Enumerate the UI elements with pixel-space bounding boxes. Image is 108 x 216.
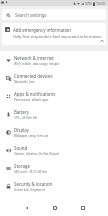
staticText: 37% xyxy=(85,1,92,6)
button[interactable]: Connected devices xyxy=(0,69,108,87)
staticText: Help first responders find important inf… xyxy=(13,34,102,39)
button[interactable]: Add emergency information xyxy=(2,23,106,45)
button[interactable]: Display xyxy=(0,123,108,141)
staticText: 37% - 4h 50m left xyxy=(14,116,38,120)
button[interactable]: Sound xyxy=(0,141,108,159)
staticText: 10:39 xyxy=(96,1,105,6)
staticText: Display xyxy=(14,127,29,133)
staticText: 44% used - 35.57 GB free xyxy=(14,170,48,174)
staticText: Network & internet xyxy=(14,55,54,61)
button[interactable]: Storage xyxy=(0,159,108,177)
staticText: Apps & notifications xyxy=(14,91,56,97)
button[interactable]: Security & location xyxy=(0,177,108,195)
button[interactable]: Collapse xyxy=(98,37,106,45)
button[interactable]: Back xyxy=(22,203,31,212)
button[interactable]: Recent apps xyxy=(78,203,87,212)
staticText: Connected devices xyxy=(14,73,53,79)
staticText: Search settings xyxy=(15,12,47,18)
staticText: Volume, vibration, Do Not Disturb xyxy=(14,152,60,156)
staticText: Storage xyxy=(14,163,31,169)
staticText: Security & location xyxy=(14,181,53,187)
staticText: Wi-Fi, mobile, data usage, hotspot xyxy=(14,62,60,66)
button[interactable]: Battery xyxy=(0,105,108,123)
button[interactable]: Home xyxy=(50,203,59,212)
button[interactable]: Apps & notifications xyxy=(0,87,108,105)
staticText: Wallpaper, sleep, font size xyxy=(14,134,49,138)
staticText: Bluetooth, Cast xyxy=(14,80,35,84)
staticText: Sound xyxy=(14,145,28,151)
staticText: Add emergency information xyxy=(13,27,72,33)
staticText: Screen lock, fingerprint xyxy=(14,188,46,192)
staticText: Battery xyxy=(14,109,30,115)
button[interactable]: Search settings xyxy=(2,9,106,20)
button[interactable]: Network & internet xyxy=(0,51,108,69)
staticText: Permissions, default apps xyxy=(14,98,49,102)
